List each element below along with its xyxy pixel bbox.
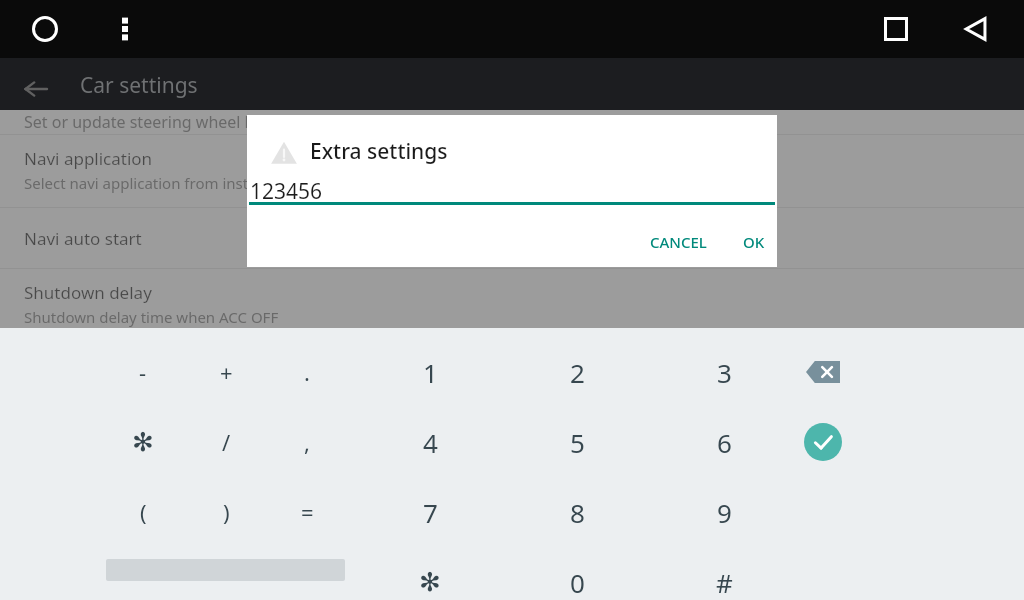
button[interactable]: Navi auto start: [0, 208, 1024, 268]
button[interactable]: +: [184, 338, 268, 406]
button[interactable]: Navi application: [0, 135, 1024, 207]
button[interactable]: ✻: [101, 408, 185, 476]
button[interactable]: Navigate up: [14, 67, 58, 111]
staticText: 5: [570, 425, 585, 460]
button[interactable]: 0: [535, 548, 619, 600]
staticText: 7: [423, 495, 438, 530]
staticText: #: [716, 565, 733, 600]
staticText: 4: [423, 425, 438, 460]
button[interactable]: 3: [682, 338, 766, 406]
button[interactable]: 5: [535, 408, 619, 476]
button[interactable]: 2: [535, 338, 619, 406]
staticText: Shutdown delay time when ACC OFF: [24, 307, 279, 327]
staticText: 0: [570, 565, 585, 600]
button[interactable]: Enter: [781, 408, 865, 476]
staticText: 6: [717, 425, 732, 460]
staticText: Select navi application from installed: [24, 173, 283, 193]
staticText: 1: [423, 355, 438, 390]
staticText: Set or update steering wheel keys: [24, 111, 278, 133]
staticText: 3: [717, 355, 732, 390]
button[interactable]: 9: [682, 478, 766, 546]
staticText: ✻: [419, 567, 441, 597]
button[interactable]: /: [184, 408, 268, 476]
staticText: -: [139, 357, 147, 387]
button[interactable]: CANCEL: [635, 223, 721, 261]
button[interactable]: More options: [102, 6, 148, 52]
button[interactable]: ,: [265, 408, 349, 476]
button[interactable]: 4: [388, 408, 472, 476]
button[interactable]: Home: [22, 6, 68, 52]
button[interactable]: 7: [388, 478, 472, 546]
button[interactable]: (: [101, 478, 185, 546]
staticText: .: [304, 357, 310, 387]
staticText: (: [140, 497, 147, 527]
button[interactable]: Backspace: [781, 338, 865, 406]
staticText: OK: [743, 232, 765, 252]
staticText: +: [220, 357, 233, 387]
button[interactable]: #: [682, 548, 766, 600]
staticText: 123456: [250, 177, 323, 206]
button[interactable]: -: [101, 338, 185, 406]
staticText: ): [223, 497, 230, 527]
staticText: Car settings: [80, 71, 198, 100]
button[interactable]: 1: [388, 338, 472, 406]
button[interactable]: 8: [535, 478, 619, 546]
staticText: Extra settings: [310, 137, 448, 166]
button[interactable]: =: [265, 478, 349, 546]
staticText: 2: [570, 355, 585, 390]
button[interactable]: .: [265, 338, 349, 406]
staticText: /: [222, 427, 231, 457]
button[interactable]: Back: [953, 6, 999, 52]
staticText: Navi application: [24, 147, 153, 170]
staticText: 8: [570, 495, 585, 530]
button[interactable]: ): [184, 478, 268, 546]
staticText: 9: [717, 495, 732, 530]
button[interactable]: ✻: [388, 548, 472, 600]
staticText: ✻: [132, 427, 154, 457]
staticText: =: [301, 497, 314, 527]
staticText: CANCEL: [650, 232, 707, 252]
staticText: Navi auto start: [24, 227, 142, 250]
button[interactable]: Recent apps: [873, 6, 919, 52]
button[interactable]: Shutdown delay: [0, 269, 1024, 328]
staticText: Shutdown delay: [24, 281, 152, 304]
staticText: ,: [304, 427, 310, 457]
button[interactable]: 6: [682, 408, 766, 476]
button[interactable]: OK: [733, 223, 775, 261]
